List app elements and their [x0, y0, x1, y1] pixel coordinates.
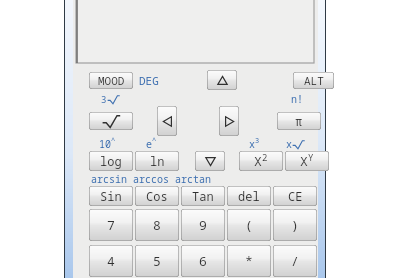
staticText: 4	[107, 252, 115, 270]
button[interactable]: 9	[181, 209, 225, 241]
button[interactable]: /	[273, 245, 317, 277]
staticText: Cos	[146, 188, 168, 204]
staticText: 9	[199, 216, 207, 234]
button[interactable]: Tan	[181, 186, 225, 206]
staticText: π	[295, 113, 303, 129]
button[interactable]: Up	[207, 70, 237, 90]
staticText: 5	[153, 252, 161, 270]
button[interactable]: X	[285, 151, 329, 171]
staticText: Sin	[100, 188, 122, 204]
staticText: ^	[152, 136, 157, 146]
staticText: CE	[288, 188, 303, 204]
button[interactable]: 8	[135, 209, 179, 241]
button[interactable]: Down	[195, 151, 225, 171]
button[interactable]: 6	[181, 245, 225, 277]
button[interactable]: ALT	[293, 72, 334, 89]
button[interactable]: X	[239, 151, 283, 171]
button[interactable]	[76, 0, 314, 63]
staticText: (	[245, 216, 253, 234]
staticText: x	[286, 137, 292, 151]
staticText: X	[300, 152, 308, 170]
staticText: log	[100, 153, 122, 169]
staticText: 3	[255, 136, 260, 146]
staticText: 2	[262, 151, 268, 163]
staticText: del	[238, 188, 260, 204]
staticText: MOOD	[98, 73, 125, 88]
button[interactable]: MOOD	[89, 72, 133, 89]
button[interactable]: *	[227, 245, 271, 277]
button[interactable]: Right	[219, 106, 239, 136]
staticText: ALT	[304, 73, 324, 88]
staticText: x	[249, 137, 255, 151]
staticText: Tan	[192, 188, 214, 204]
staticText: 10	[99, 137, 111, 151]
staticText: X	[254, 152, 262, 170]
button[interactable]: Cube root	[89, 112, 133, 130]
button[interactable]: (	[227, 209, 271, 241]
staticText: 7	[107, 216, 115, 234]
button[interactable]: Cos	[135, 186, 179, 206]
staticText: 3	[101, 93, 107, 105]
button[interactable]: del	[227, 186, 271, 206]
button[interactable]: CE	[273, 186, 317, 206]
button[interactable]: Sin	[89, 186, 133, 206]
staticText: arcsin	[91, 172, 127, 186]
staticText: ln	[150, 153, 165, 169]
staticText: *	[245, 252, 253, 270]
button[interactable]: π	[277, 112, 321, 130]
staticText: 8	[153, 216, 161, 234]
staticText: ^	[111, 136, 116, 146]
staticText: Y	[308, 151, 314, 163]
button[interactable]: Left	[157, 106, 177, 136]
staticText: n!	[291, 92, 303, 106]
staticText: /	[291, 252, 299, 270]
staticText: )	[291, 216, 299, 234]
staticText: arccos	[133, 172, 169, 186]
button[interactable]: )	[273, 209, 317, 241]
staticText: arctan	[175, 172, 211, 186]
staticText: e	[146, 137, 152, 151]
staticText: DEG	[139, 73, 159, 88]
button[interactable]: log	[89, 151, 133, 171]
button[interactable]: 4	[89, 245, 133, 277]
button[interactable]: ln	[135, 151, 179, 171]
button[interactable]: 5	[135, 245, 179, 277]
button[interactable]: 7	[89, 209, 133, 241]
staticText: 6	[199, 252, 207, 270]
